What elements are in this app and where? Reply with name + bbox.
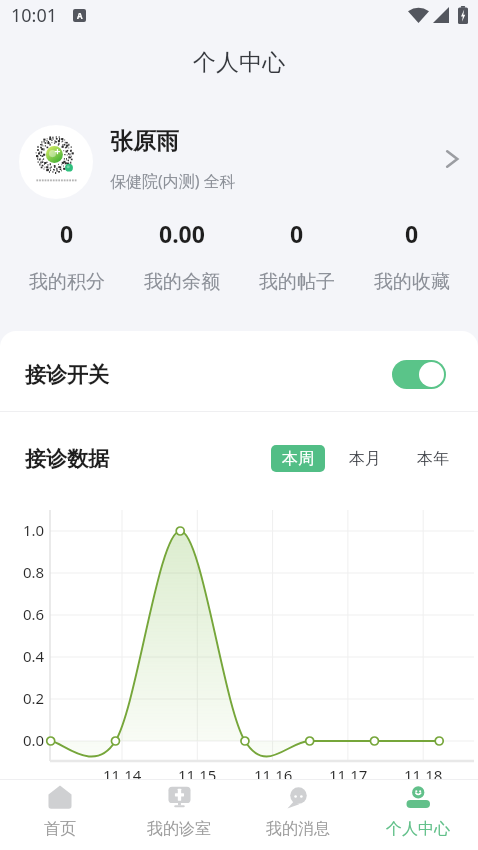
staticText: 10:01 [11, 3, 58, 28]
button[interactable]: 本月 [349, 444, 381, 474]
staticText: 11.14 [103, 765, 142, 785]
staticText: 本月 [349, 449, 381, 469]
staticText: 11.15 [178, 765, 217, 785]
button[interactable]: 首页 [0, 780, 119, 839]
button[interactable]: 0 [354, 200, 469, 294]
other: 查看详情 [440, 147, 464, 171]
staticText: 我的余额 [144, 270, 220, 294]
staticText: 0.0 [23, 730, 45, 750]
button[interactable]: 本周 [271, 445, 325, 472]
staticText: 0.00 [159, 218, 205, 249]
staticText: 首页 [44, 819, 76, 839]
staticText: 11.17 [329, 765, 368, 785]
staticText: 接诊开关 [25, 362, 109, 388]
staticText: 0.2 [23, 688, 45, 708]
staticText: 11.16 [254, 765, 293, 785]
staticText: 0.6 [23, 604, 45, 624]
button[interactable]: 我的诊室 [119, 780, 238, 839]
button[interactable]: 0 [10, 200, 124, 294]
staticText: 本周 [282, 449, 314, 469]
staticText: 个人中心 [386, 819, 450, 839]
staticText: 本年 [417, 449, 449, 469]
staticText: 我的收藏 [374, 270, 450, 294]
staticText: 0.4 [23, 646, 45, 666]
staticText: 接诊数据 [25, 446, 109, 472]
button[interactable]: 本年 [417, 444, 449, 474]
staticText: 我的消息 [266, 819, 330, 839]
staticText: 保健院(内测) 全科 [110, 170, 236, 192]
button[interactable]: 0.00 [124, 200, 239, 294]
staticText: A [77, 10, 83, 21]
staticText: 我的诊室 [147, 819, 211, 839]
button[interactable]: 接诊开关 [392, 360, 446, 389]
staticText: 0 [60, 218, 74, 249]
staticText: 11.18 [404, 765, 443, 785]
staticText: 0.8 [23, 562, 45, 582]
button[interactable]: 个人中心 [358, 780, 478, 839]
button[interactable]: 0 [239, 200, 354, 294]
staticText: 我的积分 [29, 270, 105, 294]
staticText: 个人中心 [193, 48, 285, 77]
button[interactable]: 张原雨 [0, 94, 478, 200]
staticText: 1.0 [23, 520, 45, 540]
staticText: 我的帖子 [259, 270, 335, 294]
staticText: 张原雨 [110, 127, 179, 156]
staticText: 0 [290, 218, 304, 249]
staticText: 0 [405, 218, 419, 249]
button[interactable]: 我的消息 [238, 780, 358, 839]
button[interactable]: 接诊开关 [0, 334, 478, 415]
